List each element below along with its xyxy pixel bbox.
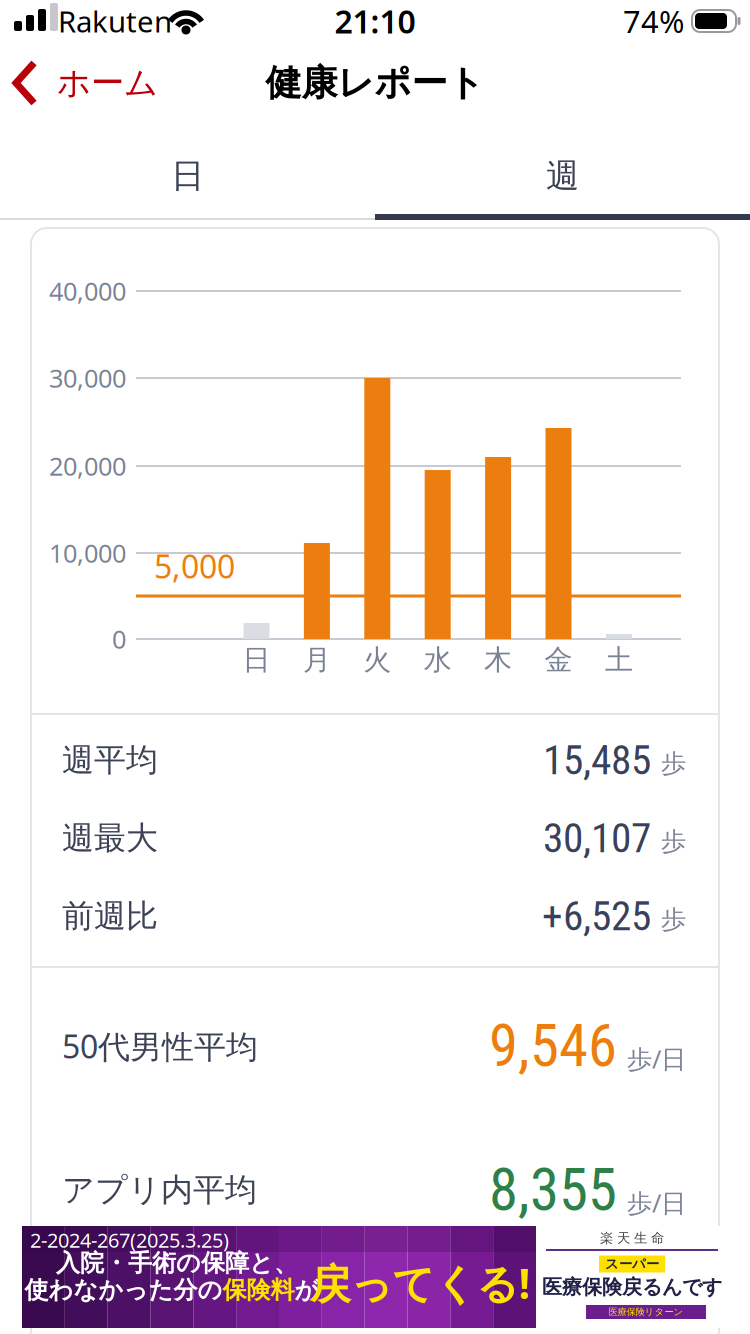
staticText: 木	[484, 643, 512, 677]
staticText: 10,000	[49, 536, 126, 570]
staticText: 週平均	[62, 740, 158, 780]
staticText: 水	[424, 643, 452, 677]
button[interactable]: 日	[0, 130, 375, 222]
staticText: 日	[242, 643, 270, 677]
staticText: 火	[363, 643, 391, 677]
staticText: 40,000	[49, 274, 126, 308]
staticText: 楽 天 生 命	[600, 1230, 664, 1246]
staticText: 20,000	[49, 449, 126, 483]
staticText: 30,107	[543, 814, 651, 862]
staticText: 入院・手術の保障と、	[56, 1248, 298, 1278]
staticText: 歩/日	[627, 1186, 686, 1219]
staticText: 21:10	[334, 0, 415, 42]
staticText: 5,000	[154, 545, 235, 587]
staticText: 9,546	[489, 1012, 617, 1080]
staticText: ホーム	[57, 62, 158, 103]
staticText: 戻ってくる!	[309, 1256, 530, 1310]
staticText: 15,485	[543, 736, 651, 784]
staticText: 30,000	[49, 361, 126, 395]
staticText: 医療保険リターン	[608, 1306, 683, 1318]
staticText: 歩	[661, 748, 686, 779]
staticText: 50代男性平均	[62, 1025, 258, 1067]
staticText: 月	[303, 643, 331, 677]
staticText: 74%	[623, 1, 684, 41]
staticText: 医療保険戻るんです	[542, 1275, 722, 1299]
staticText: 週	[546, 155, 579, 196]
staticText: 保険料	[222, 1275, 294, 1305]
staticText: 週最大	[62, 818, 158, 858]
staticText: +6,525	[542, 892, 651, 940]
staticText: 2-2024-267(2025.3.25)	[30, 1227, 229, 1253]
staticText: 歩	[661, 904, 686, 935]
staticText: 土	[605, 643, 633, 677]
staticText: スーパー	[605, 1256, 659, 1272]
staticText: アプリ内平均	[62, 1170, 257, 1210]
staticText: 前週比	[62, 896, 158, 936]
staticText: 金	[544, 643, 572, 677]
staticText: 歩/日	[627, 1042, 686, 1075]
staticText: 日	[171, 155, 204, 196]
button[interactable]: 週	[375, 130, 750, 222]
button[interactable]: 2-2024-267(2025.3.25)	[22, 1226, 728, 1328]
staticText: 使わなかった分の	[24, 1275, 222, 1305]
staticText: 健康レポート	[265, 61, 484, 105]
staticText: 0	[112, 622, 126, 656]
staticText: 歩	[661, 826, 686, 857]
button[interactable]: ホーム	[0, 62, 240, 104]
staticText: 8,355	[489, 1156, 617, 1224]
staticText: が	[294, 1275, 319, 1305]
staticText: Rakuten	[58, 1, 172, 40]
